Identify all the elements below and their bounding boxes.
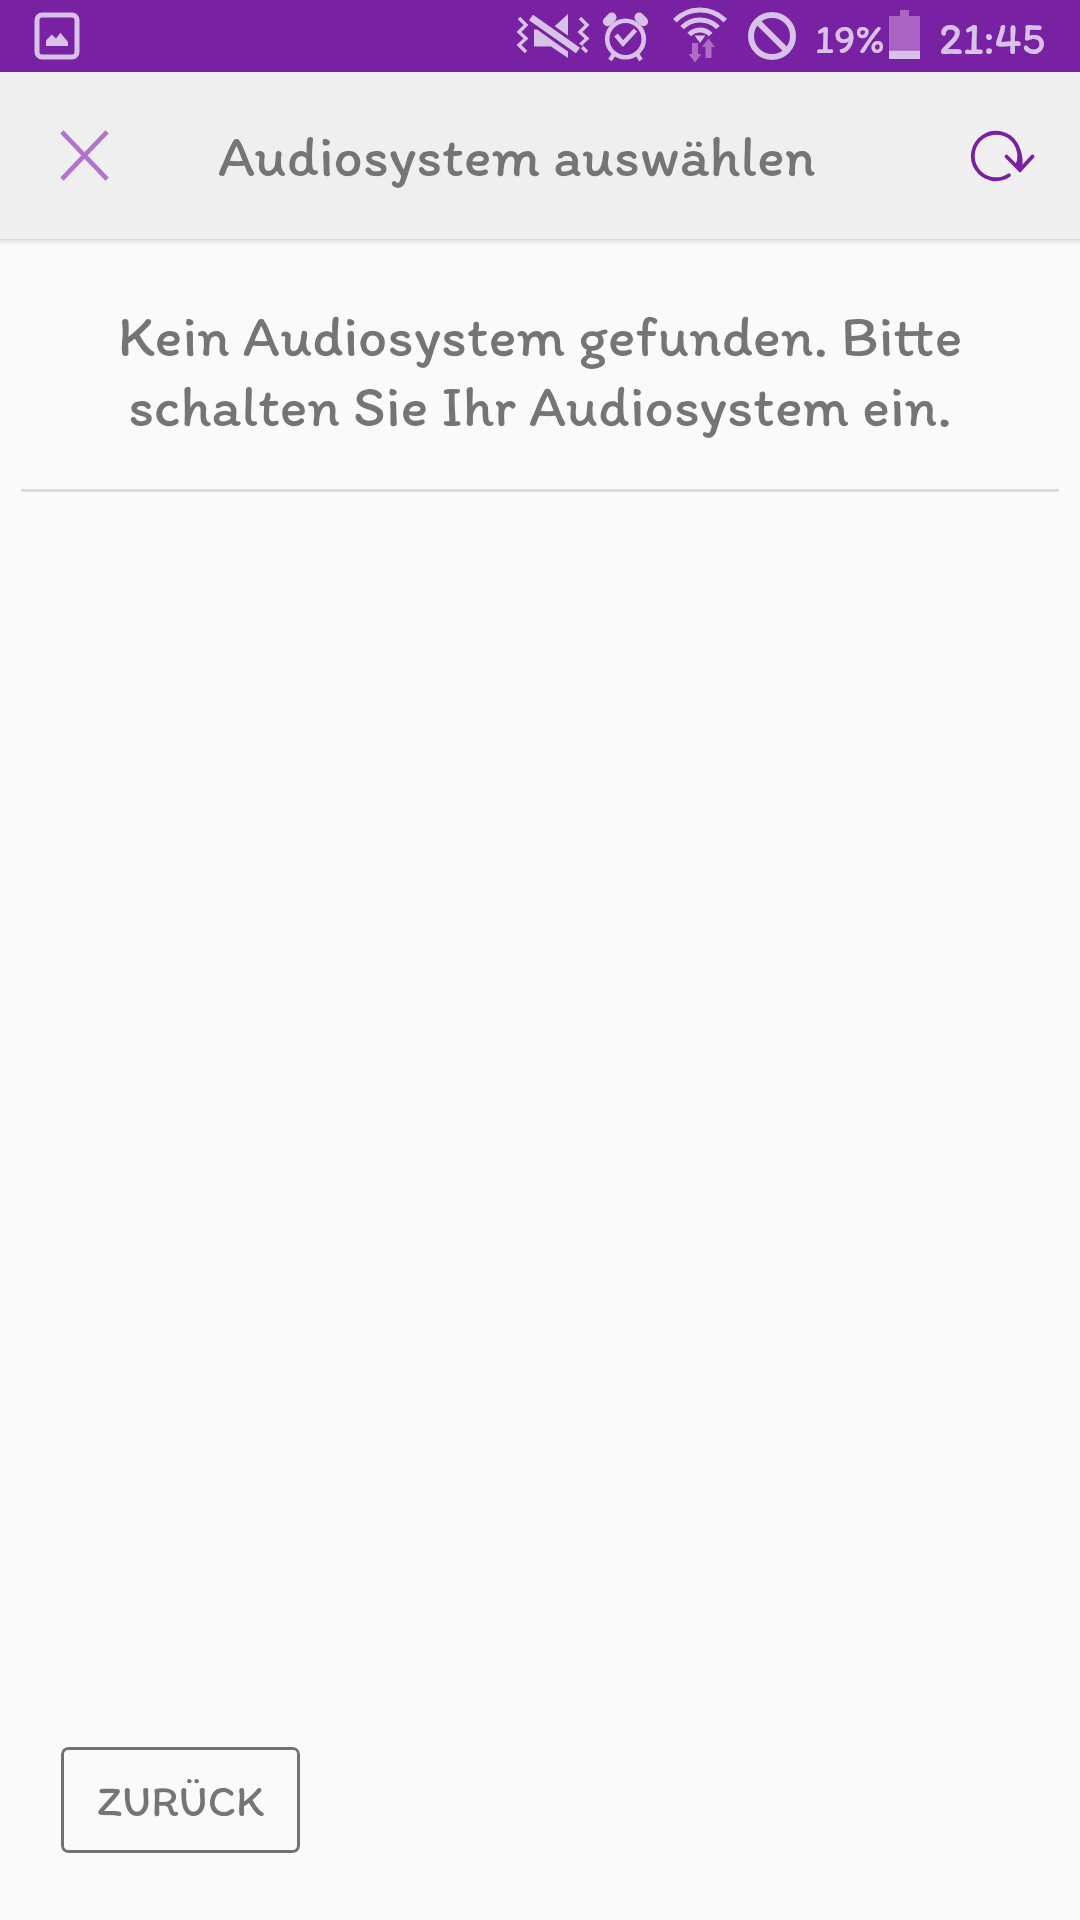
button[interactable]: ZURÜCK: [61, 1747, 300, 1853]
button[interactable]: Aktualisieren: [941, 101, 1050, 210]
staticText: 19%: [815, 14, 885, 63]
staticText: Kein Audiosystem gefunden. Bitte schalte…: [0, 301, 1080, 441]
staticText: Audiosystem auswählen: [218, 121, 816, 191]
button[interactable]: Schließen: [30, 101, 139, 210]
staticText: ZURÜCK: [97, 1774, 265, 1827]
staticText: 21:45: [939, 11, 1046, 65]
